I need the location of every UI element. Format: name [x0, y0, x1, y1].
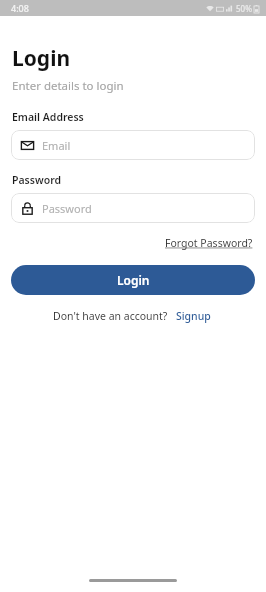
staticText: 4:08 [11, 2, 29, 14]
staticText: Login [12, 44, 71, 73]
button[interactable]: Login [11, 265, 255, 295]
staticText: Email Address [12, 110, 84, 124]
staticText: Forgot Password? [165, 236, 253, 250]
staticText: Email [42, 138, 71, 153]
staticText: Enter details to login [12, 78, 124, 94]
button[interactable]: Password [11, 193, 255, 223]
button[interactable]: Email [11, 130, 255, 160]
staticText: Login [117, 272, 150, 288]
staticText: Password [42, 201, 92, 216]
button[interactable]: Forgot Password? [163, 234, 255, 252]
button[interactable]: Signup [174, 307, 213, 325]
staticText: Password [12, 173, 62, 187]
staticText: Don't have an account? [53, 309, 168, 323]
staticText: Signup [176, 309, 211, 323]
staticText: 50% [236, 3, 252, 14]
